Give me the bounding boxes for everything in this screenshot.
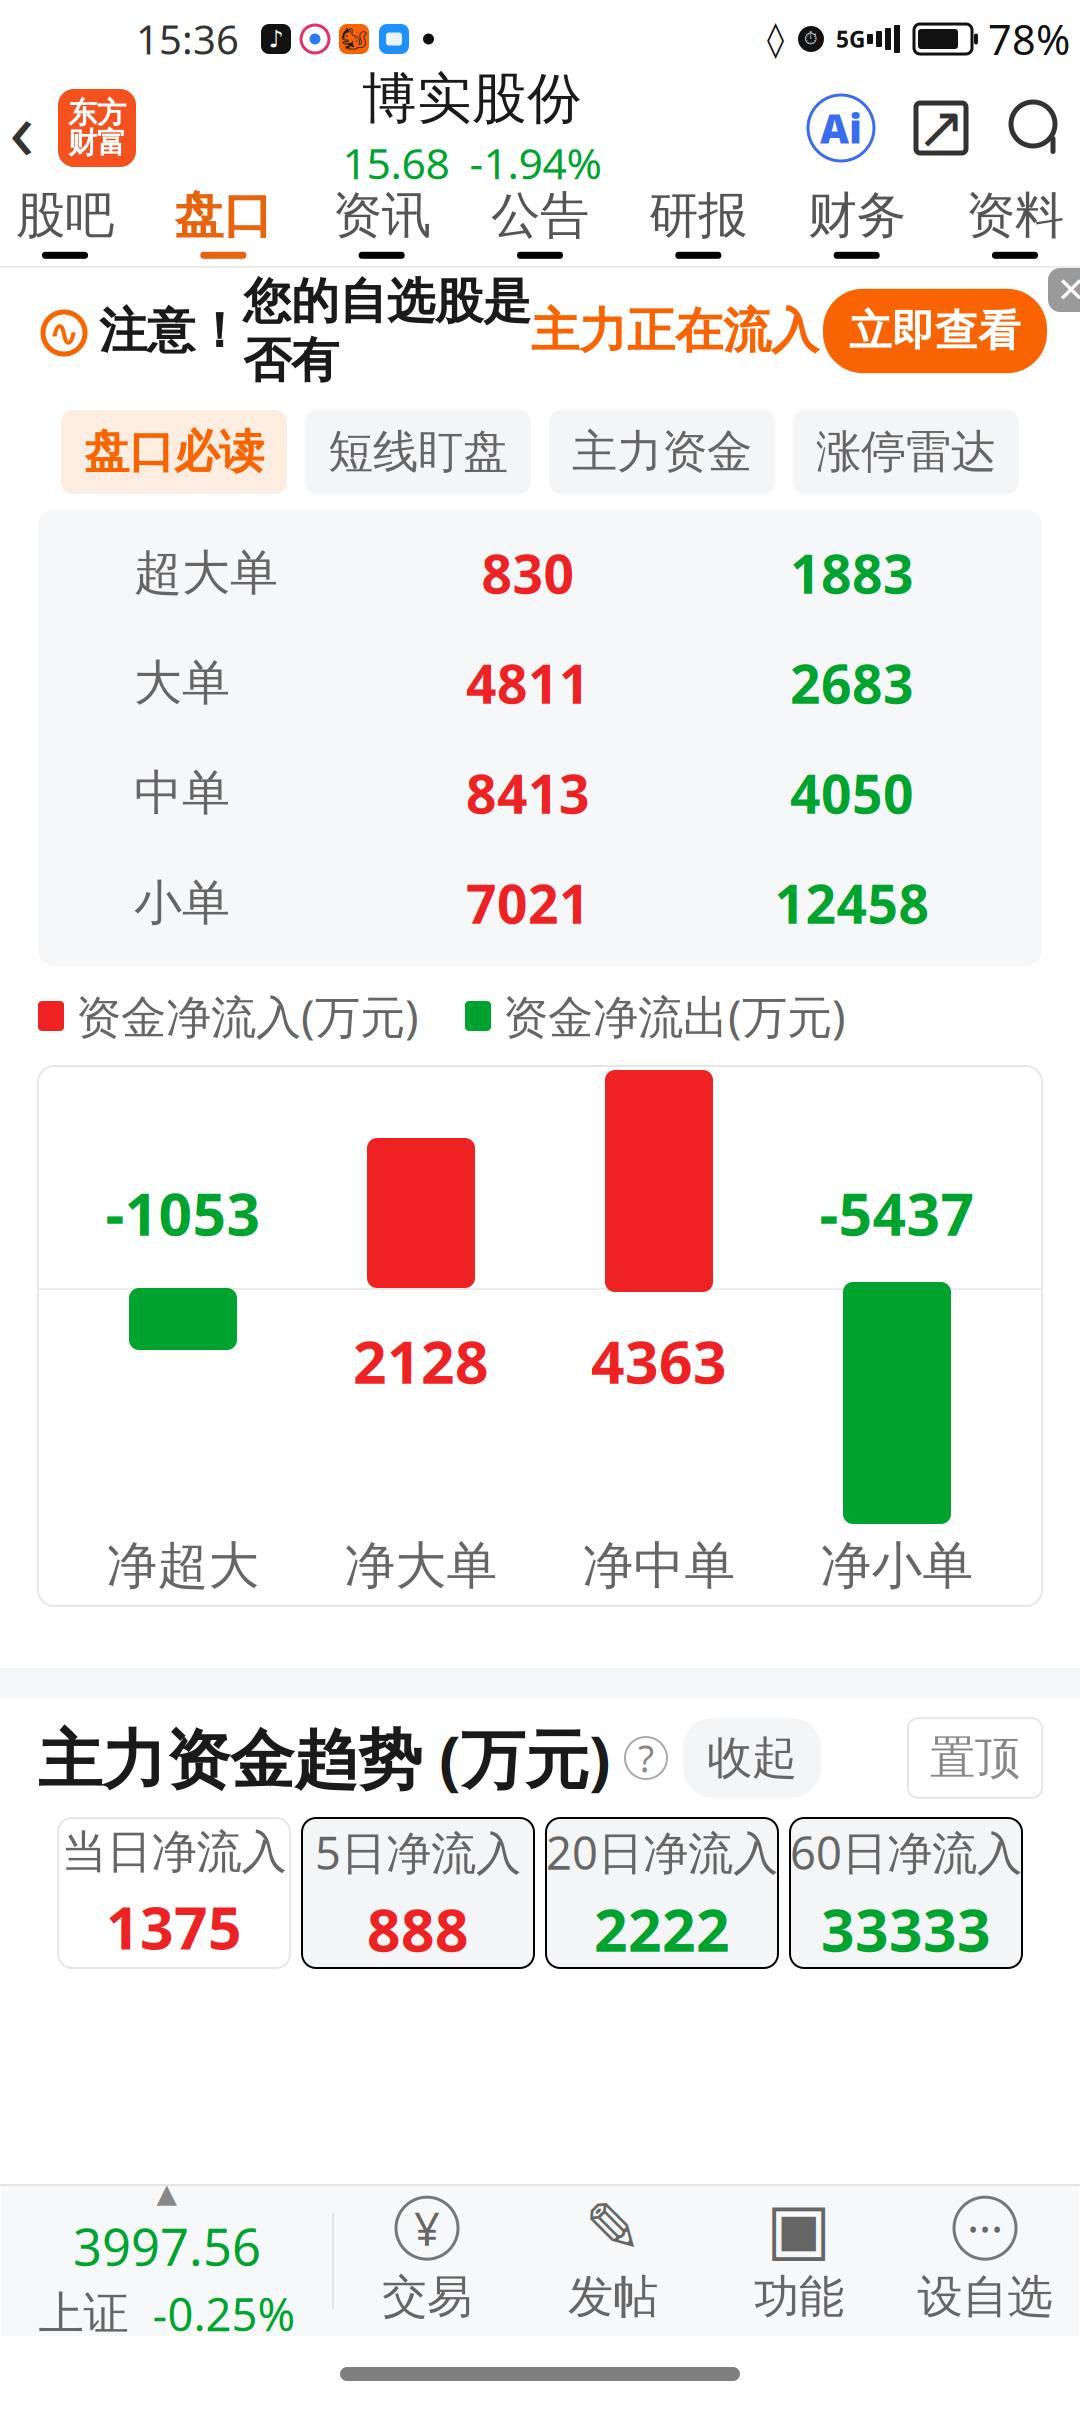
button[interactable]: Help bbox=[625, 1737, 667, 1779]
button[interactable]: 主力资金 bbox=[549, 410, 775, 494]
staticText: 您的自选股是否有 bbox=[243, 272, 531, 390]
staticText: 830 bbox=[481, 538, 574, 608]
button[interactable]: ▣ bbox=[706, 2186, 892, 2336]
staticText: 8413 bbox=[466, 758, 590, 828]
staticText: 功能 bbox=[754, 2269, 844, 2325]
staticText: 小单 bbox=[134, 873, 230, 932]
staticText: ‹ bbox=[9, 73, 35, 183]
button[interactable]: 当日净流入 bbox=[58, 1818, 290, 1968]
staticText: 🐿 bbox=[340, 27, 367, 51]
staticText: ✎ bbox=[584, 2189, 642, 2267]
button[interactable]: 盘口 bbox=[170, 185, 276, 259]
staticText: 交易 bbox=[382, 2269, 472, 2325]
button[interactable]: 资料 bbox=[962, 185, 1068, 259]
staticText: 立即查看 bbox=[849, 305, 1021, 357]
staticText: 主力资金趋势 (万元) bbox=[38, 1715, 611, 1800]
staticText: 盘口必读 bbox=[84, 424, 264, 480]
staticText: 中单 bbox=[134, 763, 230, 822]
staticText: ◊ bbox=[767, 19, 784, 59]
button[interactable]: AI assistant bbox=[808, 95, 874, 161]
staticText: 东方 bbox=[68, 95, 126, 131]
button[interactable]: 5日净流入 bbox=[302, 1818, 534, 1968]
staticText: ? bbox=[638, 1733, 654, 1783]
staticText: 78% bbox=[988, 12, 1070, 66]
staticText: 资金净流出(万元) bbox=[503, 986, 846, 1046]
staticText: 收起 bbox=[707, 1730, 797, 1786]
staticText: 设自选 bbox=[917, 2269, 1052, 2325]
staticText: ▲ bbox=[156, 2178, 177, 2208]
staticText: 主力正在流入 bbox=[531, 301, 819, 360]
button[interactable]: 收起 bbox=[683, 1718, 821, 1798]
button[interactable]: Share bbox=[908, 95, 974, 161]
staticText: 盘口 bbox=[174, 185, 272, 246]
button[interactable]: Search bbox=[1004, 95, 1070, 161]
staticText: 15.68 bbox=[342, 134, 449, 191]
button[interactable]: Close ad bbox=[1048, 268, 1080, 312]
staticText: 净超大 bbox=[106, 1535, 259, 1597]
button[interactable]: ¥ bbox=[334, 2186, 520, 2336]
staticText: 财富 bbox=[68, 125, 126, 161]
button[interactable]: ✎ bbox=[520, 2186, 706, 2336]
staticText: 超大单 bbox=[134, 543, 278, 602]
staticText: 短线盯盘 bbox=[328, 424, 508, 480]
staticText: 2222 bbox=[594, 1890, 730, 1968]
staticText: 涨停雷达 bbox=[816, 424, 996, 480]
staticText: 5日净流入 bbox=[315, 1822, 521, 1882]
button[interactable]: 研报 bbox=[645, 185, 751, 259]
button[interactable]: 涨停雷达 bbox=[793, 410, 1019, 494]
button[interactable]: 短线盯盘 bbox=[305, 410, 531, 494]
button[interactable]: 立即查看 bbox=[823, 289, 1047, 373]
button[interactable]: 20日净流入 bbox=[546, 1818, 778, 1968]
staticText: 研报 bbox=[649, 185, 747, 246]
staticText: 2683 bbox=[790, 648, 914, 718]
button[interactable]: 股吧 bbox=[12, 185, 118, 259]
staticText: 4811 bbox=[466, 648, 590, 718]
staticText: 净大单 bbox=[344, 1535, 497, 1597]
staticText: 5G bbox=[836, 24, 865, 54]
staticText: 净小单 bbox=[820, 1535, 973, 1597]
staticText: 7021 bbox=[466, 868, 590, 938]
staticText: 3997.56 bbox=[73, 2212, 261, 2280]
staticText: -0.25% bbox=[152, 2284, 295, 2344]
staticText: 股吧 bbox=[16, 185, 114, 246]
staticText: 4050 bbox=[790, 758, 914, 828]
staticText: -1.94% bbox=[469, 134, 601, 191]
staticText: ⏱ bbox=[804, 30, 818, 47]
staticText: 资料 bbox=[966, 185, 1064, 246]
button[interactable]: 盘口必读 bbox=[61, 410, 287, 494]
staticText: ✕ bbox=[1056, 270, 1080, 310]
staticText: 博实股份 bbox=[362, 65, 582, 132]
staticText: 33333 bbox=[821, 1890, 991, 1968]
button[interactable]: Shanghai Composite index bbox=[2, 2186, 332, 2336]
button[interactable]: Back bbox=[0, 80, 58, 176]
staticText: 4363 bbox=[591, 1322, 727, 1400]
staticText: 60日净流入 bbox=[790, 1822, 1022, 1882]
staticText: 888 bbox=[367, 1890, 469, 1968]
staticText: 资金净流入(万元) bbox=[76, 986, 419, 1046]
staticText: -5437 bbox=[819, 1174, 974, 1252]
button[interactable]: East Money home bbox=[58, 89, 136, 167]
button[interactable]: 置顶 bbox=[908, 1718, 1042, 1798]
button[interactable]: 财务 bbox=[804, 185, 910, 259]
staticText: 2128 bbox=[353, 1322, 489, 1400]
staticText: -1053 bbox=[105, 1174, 260, 1252]
staticText: Ai bbox=[820, 101, 862, 154]
staticText: 上证 bbox=[38, 2286, 128, 2342]
button[interactable]: 资讯 bbox=[329, 185, 435, 259]
button[interactable]: 60日净流入 bbox=[790, 1818, 1022, 1968]
staticText: ··· bbox=[967, 2198, 1003, 2258]
staticText: 1883 bbox=[790, 538, 914, 608]
staticText: 资讯 bbox=[333, 185, 431, 246]
button[interactable]: 公告 bbox=[487, 185, 593, 259]
staticText: 净中单 bbox=[582, 1535, 735, 1597]
staticText: 主力资金 bbox=[572, 424, 752, 480]
button[interactable]: ··· bbox=[892, 2186, 1078, 2336]
staticText: 注意！ bbox=[99, 301, 243, 360]
staticText: ¥ bbox=[414, 2198, 440, 2258]
staticText: ∿ bbox=[48, 312, 79, 354]
staticText: ↗ bbox=[916, 95, 965, 161]
staticText: 置顶 bbox=[930, 1730, 1020, 1786]
staticText: 大单 bbox=[134, 653, 230, 712]
staticText: 公告 bbox=[491, 185, 589, 246]
staticText: 20日净流入 bbox=[546, 1822, 778, 1882]
